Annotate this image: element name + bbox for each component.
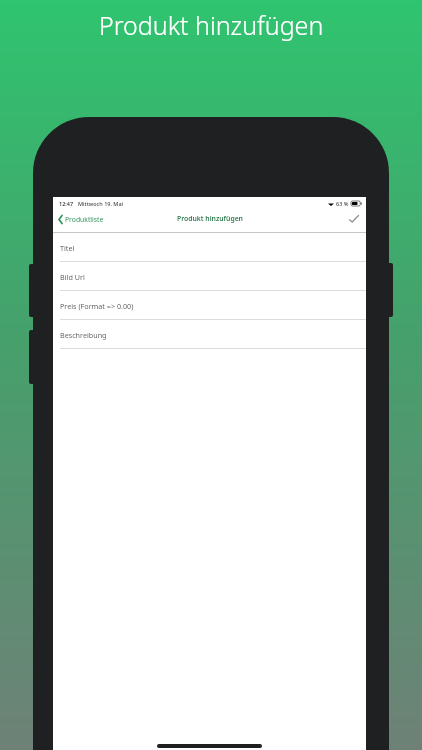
button[interactable]: Titel (53, 233, 366, 262)
staticText: Preis (Format => 0.00) (60, 301, 134, 311)
button[interactable] (349, 215, 359, 223)
staticText: 12:47 (59, 200, 74, 207)
staticText: Titel (60, 243, 75, 253)
staticText: 63 % (336, 200, 349, 207)
staticText: Beschreibung (60, 330, 107, 340)
button[interactable]: Bild Url (53, 262, 366, 291)
staticText: Bild Url (60, 272, 85, 282)
button[interactable]: Beschreibung (53, 320, 366, 349)
staticText: Produkt hinzufügen (99, 8, 324, 42)
button[interactable]: Produktliste (58, 215, 104, 224)
button[interactable]: Preis (Format => 0.00) (53, 291, 366, 320)
staticText: Produktliste (65, 215, 104, 224)
staticText: Produkt hinzufügen (177, 214, 243, 223)
staticText: Mittwoch 19. Mai (78, 200, 124, 207)
